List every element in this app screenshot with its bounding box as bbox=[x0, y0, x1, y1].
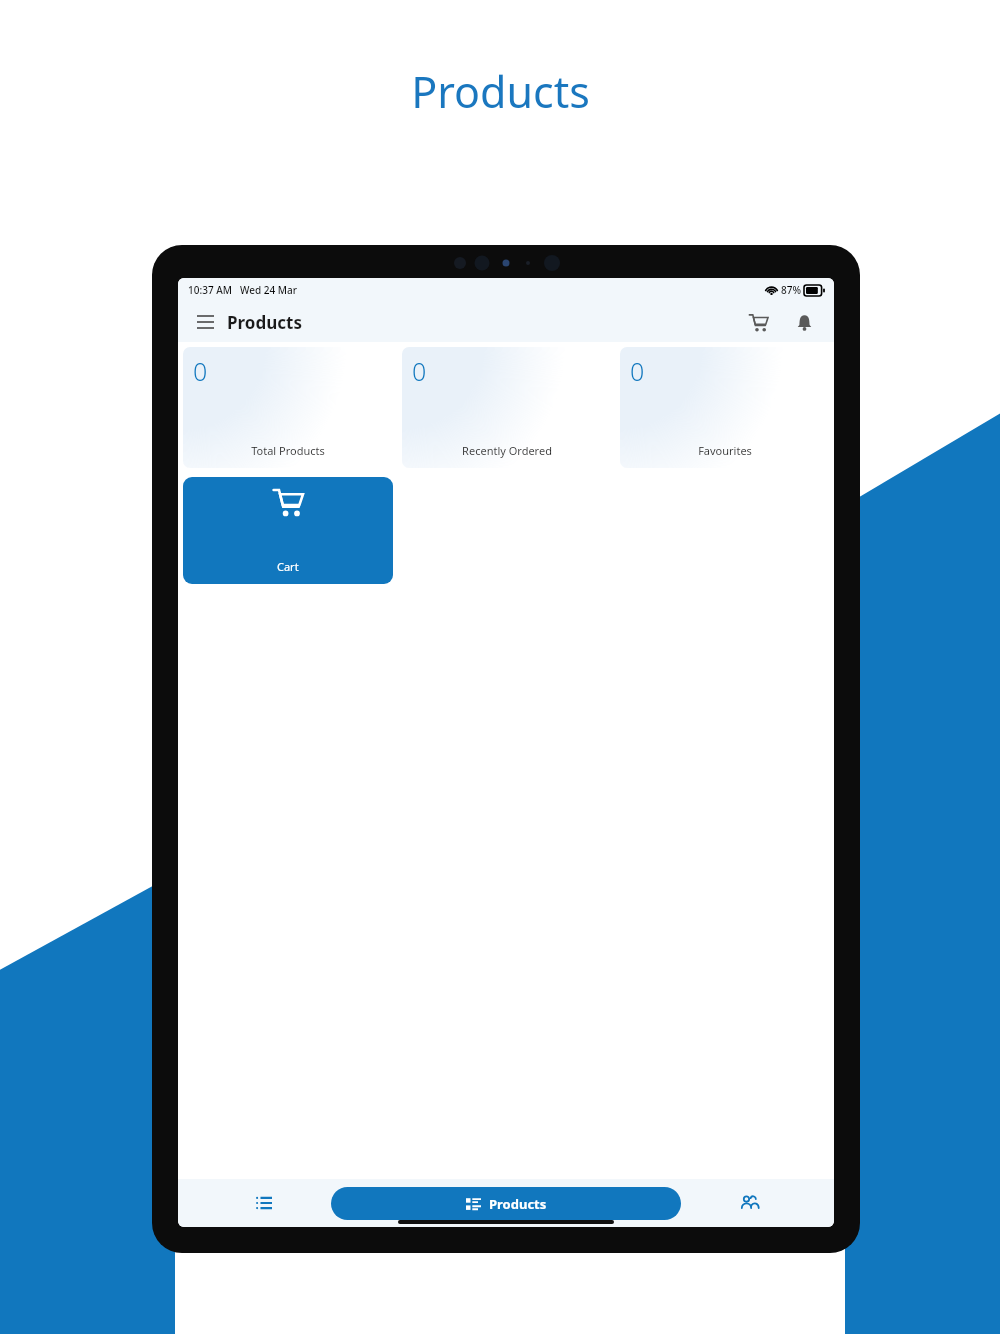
staticText: 10:37 AM bbox=[188, 283, 232, 297]
button[interactable]: Products bbox=[331, 1187, 681, 1220]
button[interactable]: 0 bbox=[402, 347, 611, 468]
button[interactable]: Cart bbox=[742, 306, 774, 338]
staticText: Products bbox=[489, 1195, 547, 1213]
button[interactable]: Orders bbox=[196, 1179, 331, 1227]
staticText: Total Products bbox=[251, 443, 325, 458]
staticText: 0 bbox=[193, 354, 208, 388]
staticText: 87% bbox=[781, 283, 801, 297]
staticText: Products bbox=[411, 62, 590, 121]
button[interactable]: Cart bbox=[183, 477, 393, 584]
button[interactable]: 0 bbox=[183, 347, 393, 468]
staticText: 0 bbox=[630, 354, 645, 388]
staticText: Favourites bbox=[698, 443, 752, 458]
staticText: Recently Ordered bbox=[462, 443, 552, 458]
staticText: 0 bbox=[412, 354, 427, 388]
button[interactable]: Notifications bbox=[788, 306, 820, 338]
button[interactable]: Customers bbox=[681, 1179, 816, 1227]
staticText: Cart bbox=[277, 559, 299, 574]
button[interactable]: 0 bbox=[620, 347, 829, 468]
staticText: Wed 24 Mar bbox=[240, 283, 297, 297]
button[interactable]: Menu bbox=[192, 309, 218, 335]
staticText: Products bbox=[227, 311, 302, 334]
